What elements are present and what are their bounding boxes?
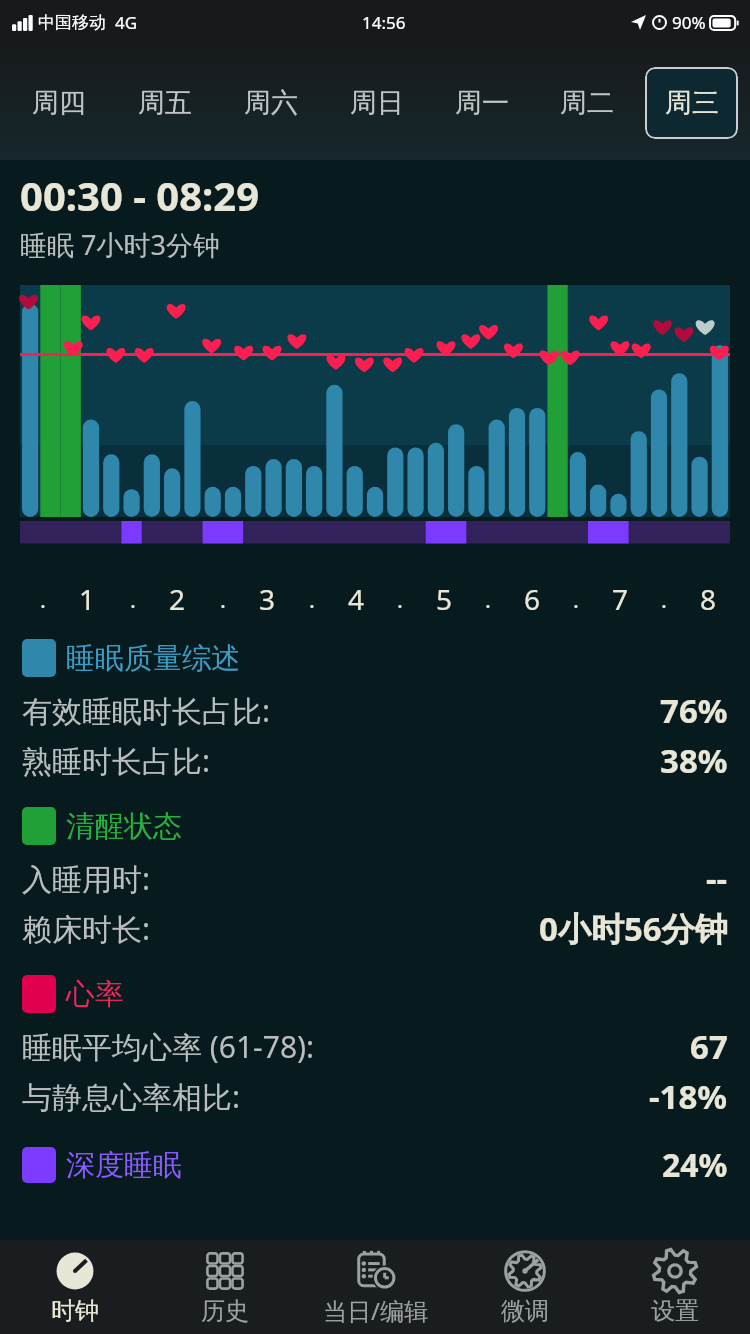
- button[interactable]: 清醒状态: [22, 807, 728, 845]
- staticText: 5: [436, 580, 453, 618]
- button[interactable]: 周六: [224, 67, 318, 139]
- button[interactable]: 微调: [450, 1240, 600, 1334]
- staticText: 深度睡眠: [66, 1147, 182, 1184]
- staticText: 周四: [32, 86, 86, 120]
- staticText: 90%: [672, 11, 706, 34]
- button[interactable]: 当日/编辑: [300, 1240, 450, 1334]
- staticText: 24%: [662, 1143, 728, 1187]
- button[interactable]: 周日: [330, 67, 423, 139]
- staticText: .: [573, 584, 579, 614]
- staticText: 周日: [350, 86, 404, 120]
- staticText: --: [706, 856, 728, 901]
- button[interactable]: 历史: [150, 1240, 300, 1334]
- staticText: 7: [612, 580, 629, 618]
- staticText: .: [661, 584, 667, 614]
- staticText: 赖床时长:: [22, 908, 151, 949]
- staticText: 3: [259, 580, 276, 618]
- staticText: 心率: [66, 976, 124, 1013]
- button[interactable]: 心率: [22, 975, 728, 1013]
- button[interactable]: 时钟: [0, 1240, 150, 1334]
- staticText: 67: [690, 1024, 728, 1069]
- button[interactable]: 深度睡眠: [22, 1143, 728, 1187]
- button[interactable]: 周四: [12, 67, 106, 139]
- staticText: .: [485, 584, 491, 614]
- staticText: 38%: [660, 738, 728, 783]
- staticText: 76%: [660, 688, 728, 733]
- button[interactable]: 周一: [435, 67, 528, 139]
- staticText: 14:56: [362, 11, 406, 34]
- staticText: 睡眠 7小时3分钟: [20, 226, 220, 263]
- button[interactable]: 周二: [540, 67, 633, 139]
- button[interactable]: 周五: [118, 67, 212, 139]
- staticText: 当日/编辑: [323, 1294, 428, 1327]
- staticText: 设置: [651, 1296, 699, 1326]
- staticText: 1: [79, 580, 96, 618]
- staticText: 中国移动: [38, 12, 106, 33]
- button[interactable]: 睡眠质量综述: [22, 639, 728, 677]
- button[interactable]: 有效睡眠时长占比:: [22, 685, 728, 735]
- button[interactable]: 入睡用时:: [22, 853, 728, 903]
- staticText: 睡眠质量综述: [66, 640, 240, 677]
- staticText: 历史: [201, 1296, 249, 1326]
- staticText: 4: [348, 580, 365, 618]
- staticText: 与静息心率相比:: [22, 1076, 241, 1117]
- staticText: 微调: [501, 1296, 549, 1326]
- staticText: 有效睡眠时长占比:: [22, 690, 271, 731]
- button[interactable]: 周三: [645, 67, 738, 139]
- staticText: 4G: [115, 11, 138, 34]
- staticText: 周三: [665, 86, 719, 120]
- staticText: 周六: [244, 86, 298, 120]
- staticText: 熟睡时长占比:: [22, 740, 211, 781]
- staticText: 清醒状态: [66, 808, 182, 845]
- staticText: 0小时56分钟: [539, 906, 728, 951]
- staticText: 周二: [560, 86, 614, 120]
- staticText: 周一: [455, 86, 509, 120]
- button[interactable]: 赖床时长:: [22, 903, 728, 953]
- button[interactable]: 与静息心率相比:: [22, 1071, 728, 1121]
- staticText: .: [40, 584, 46, 614]
- button[interactable]: 睡眠平均心率 (61-78):: [22, 1021, 728, 1071]
- staticText: .: [130, 584, 136, 614]
- staticText: .: [309, 584, 315, 614]
- button[interactable]: 设置: [600, 1240, 750, 1334]
- staticText: 8: [700, 580, 717, 618]
- staticText: 2: [169, 580, 186, 618]
- staticText: 睡眠平均心率 (61-78):: [22, 1026, 315, 1067]
- button[interactable]: 熟睡时长占比:: [22, 735, 728, 785]
- staticText: 00:30 - 08:29: [20, 168, 260, 222]
- staticText: .: [220, 584, 226, 614]
- staticText: .: [397, 584, 403, 614]
- staticText: -18%: [649, 1074, 728, 1119]
- staticText: 时钟: [51, 1296, 99, 1326]
- staticText: 6: [524, 580, 541, 618]
- staticText: 周五: [138, 86, 192, 120]
- staticText: 入睡用时:: [22, 858, 151, 899]
